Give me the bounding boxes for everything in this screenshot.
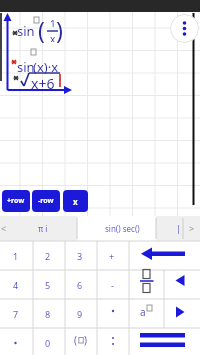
button[interactable]: 1 [0,241,32,270]
button[interactable] [96,299,128,328]
button[interactable]: 3 [64,241,96,270]
button[interactable] [96,328,128,355]
staticText: sin [17,58,35,76]
staticText: ( [38,14,45,45]
staticText: a [140,305,146,319]
button[interactable]: 6 [64,270,96,299]
button[interactable]: 7 [0,299,32,328]
button[interactable]: +row [2,190,30,212]
button[interactable] [129,241,200,270]
staticText: 8 [45,308,51,320]
button[interactable] [164,270,200,299]
button[interactable]: + [96,241,128,270]
button[interactable] [64,328,96,355]
staticText: x [50,32,56,42]
staticText: > [189,222,195,234]
staticText: | [176,222,181,234]
staticText: 7 [13,308,19,320]
button[interactable] [129,270,164,299]
staticText: 1 [50,17,56,27]
button[interactable]: sin() sec() [83,216,161,241]
staticText: 1 [13,250,19,262]
staticText: ( [74,333,77,347]
staticText: 2 [45,250,51,262]
staticText: 0 [45,337,51,349]
staticText: +row [7,196,25,206]
button[interactable]: 2 [32,241,64,270]
button[interactable]: -row [32,190,60,212]
staticText: x [73,196,78,207]
staticText: 5 [45,279,51,291]
button[interactable] [129,328,200,355]
button[interactable] [164,299,200,328]
staticText: ) [84,333,87,347]
button[interactable] [0,328,32,355]
button[interactable]: 8 [32,299,64,328]
staticText: (x)·x [33,58,59,76]
staticText: π i [38,223,48,234]
button[interactable]: 9 [64,299,96,328]
button[interactable]: π i [8,216,77,241]
staticText: sin [17,22,35,40]
staticText: 9 [77,308,83,320]
staticText: sin() sec() [105,223,140,234]
button[interactable] [170,14,199,43]
staticText: 3 [77,250,83,262]
button[interactable]: x [63,190,88,212]
staticText: + [109,250,115,262]
button[interactable] [129,299,164,328]
staticText: - [111,279,114,291]
staticText: 4 [13,279,19,291]
staticText: -row [38,196,54,206]
button[interactable]: 5 [32,270,64,299]
staticText: ) [56,14,63,45]
staticText: x+6 [31,74,55,93]
button[interactable]: 4 [0,270,32,299]
staticText: 6 [77,279,83,291]
staticText: < [1,222,7,234]
button[interactable]: - [96,270,128,299]
button[interactable]: 0 [32,328,64,355]
